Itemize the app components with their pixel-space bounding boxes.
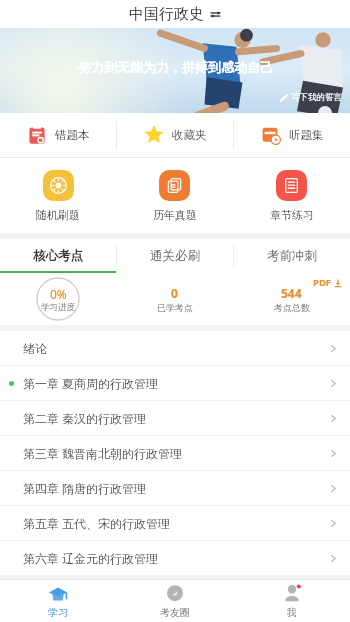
staticText: 写下我的誓言 [291, 92, 342, 103]
button[interactable]: 听题集 [234, 113, 350, 157]
button[interactable]: 学习 [0, 580, 116, 622]
button[interactable]: 第二章 秦汉的行政管理 [0, 401, 350, 435]
button[interactable]: 0 [116, 285, 233, 313]
button[interactable]: 历年真题 [116, 158, 233, 233]
button[interactable]: 收藏夹 [117, 113, 233, 157]
staticText: 第五章 五代、宋的行政管理 [23, 515, 171, 531]
staticText: 学习 [48, 606, 68, 619]
button[interactable]: Switch course [209, 8, 222, 21]
staticText: 第二章 秦汉的行政管理 [23, 410, 147, 426]
staticText: 0% [50, 286, 67, 302]
staticText: 考前冲刺 [267, 248, 317, 264]
button[interactable]: 绪论 [0, 331, 350, 365]
staticText: 核心考点 [33, 248, 83, 264]
button[interactable]: 第一章 夏商周的行政管理 [0, 366, 350, 400]
staticText: 第四章 隋唐的行政管理 [23, 480, 147, 496]
staticText: PDF [313, 276, 332, 289]
button[interactable]: 第五章 五代、宋的行政管理 [0, 506, 350, 540]
staticText: 章节练习 [270, 208, 314, 222]
staticText: 错题本 [55, 128, 90, 142]
button[interactable]: 考友圈 [116, 580, 233, 622]
staticText: 第六章 辽金元的行政管理 [23, 550, 159, 566]
staticText: 考友圈 [160, 606, 190, 619]
staticText: 我 [287, 606, 297, 619]
staticText: 第三章 魏晋南北朝的行政管理 [23, 445, 183, 461]
button[interactable]: 通关必刷 [117, 239, 233, 273]
button[interactable]: 考前冲刺 [234, 239, 350, 273]
staticText: 544 [281, 285, 302, 301]
button[interactable]: 我 [233, 580, 350, 622]
staticText: 绪论 [23, 341, 47, 356]
staticText: 历年真题 [153, 208, 197, 222]
staticText: 考点总数 [274, 302, 310, 313]
staticText: 中国行政史 [129, 5, 204, 24]
button[interactable]: 努力到无能为力，拼搏到感动自己 [0, 28, 350, 113]
button[interactable]: 章节练习 [233, 158, 350, 233]
staticText: 随机刷题 [36, 208, 80, 222]
button[interactable]: 随机刷题 [0, 158, 116, 233]
button[interactable]: 错题本 [0, 113, 116, 157]
staticText: 通关必刷 [150, 248, 200, 264]
staticText: 已学考点 [157, 302, 193, 313]
staticText: 0 [171, 285, 178, 301]
button[interactable]: 写下我的誓言 [280, 92, 342, 103]
button[interactable]: 第六章 辽金元的行政管理 [0, 541, 350, 575]
staticText: 听题集 [289, 128, 324, 142]
button[interactable]: 核心考点 [0, 239, 116, 273]
button[interactable]: 第三章 魏晋南北朝的行政管理 [0, 436, 350, 470]
staticText: 第一章 夏商周的行政管理 [23, 375, 159, 391]
staticText: 努力到无能为力，拼搏到感动自己 [78, 59, 273, 75]
staticText: 学习进度 [41, 302, 75, 313]
button[interactable]: 544 [233, 285, 350, 313]
staticText: 收藏夹 [172, 128, 207, 142]
button[interactable]: 第四章 隋唐的行政管理 [0, 471, 350, 505]
button[interactable]: PDF [313, 276, 342, 289]
